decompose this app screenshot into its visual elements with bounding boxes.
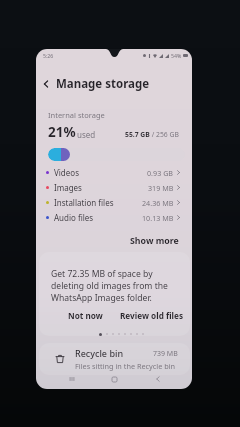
button[interactable]: Navigate up — [38, 76, 54, 92]
button[interactable]: Back — [146, 369, 170, 389]
staticText: Get 72.35 MB of space by deleting old im… — [51, 268, 168, 304]
staticText: Images — [54, 182, 82, 193]
button[interactable]: Recent apps — [60, 369, 84, 389]
staticText: Manage storage — [56, 76, 150, 92]
button[interactable]: Show more — [120, 231, 192, 249]
staticText: Files sitting in the Recycle bin — [75, 361, 176, 371]
staticText: Videos — [54, 167, 79, 178]
staticText: 319 MB — [148, 183, 174, 193]
staticText: Show more — [130, 235, 179, 245]
button[interactable]: Recycle bin — [39, 343, 190, 375]
staticText: used — [77, 129, 96, 140]
button[interactable]: Audio files — [36, 210, 192, 225]
button[interactable]: Not now — [63, 307, 108, 324]
staticText: Recycle bin — [75, 347, 124, 359]
staticText: Installation files — [54, 197, 114, 208]
staticText: 739 MB — [153, 349, 178, 359]
staticText: 0.93 GB — [147, 168, 174, 178]
button[interactable]: Installation files — [36, 195, 192, 210]
staticText: 21% — [48, 123, 76, 141]
staticText: Internal storage — [48, 110, 105, 120]
button[interactable]: Videos — [36, 165, 192, 180]
button[interactable]: Review old files — [115, 307, 188, 324]
button[interactable]: Home — [102, 369, 126, 389]
staticText: 54% — [171, 52, 182, 59]
staticText: 5:26 — [43, 52, 54, 59]
staticText: Audio files — [54, 212, 94, 223]
button[interactable]: Images — [36, 180, 192, 195]
staticText: 10.13 MB — [142, 213, 174, 223]
staticText: 55.7 GB — [125, 130, 150, 139]
staticText: Review old files — [120, 310, 183, 321]
staticText: Not now — [68, 310, 103, 321]
staticText: 24.36 MB — [142, 198, 174, 208]
staticText: / 256 GB — [150, 130, 179, 139]
